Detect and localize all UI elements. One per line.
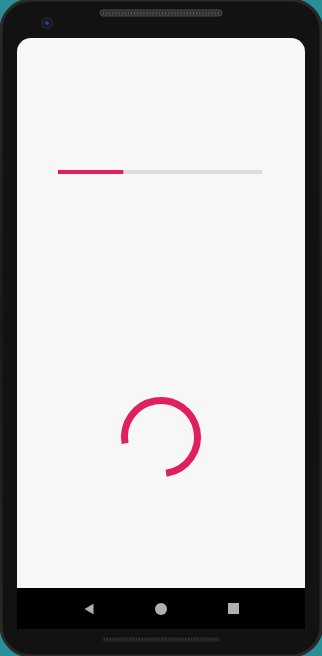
button[interactable]: Back (65, 588, 113, 629)
button[interactable]: Loading (120, 396, 202, 478)
button[interactable]: Recent apps (209, 588, 257, 629)
button[interactable] (58, 162, 262, 182)
button[interactable]: Home (137, 588, 185, 629)
